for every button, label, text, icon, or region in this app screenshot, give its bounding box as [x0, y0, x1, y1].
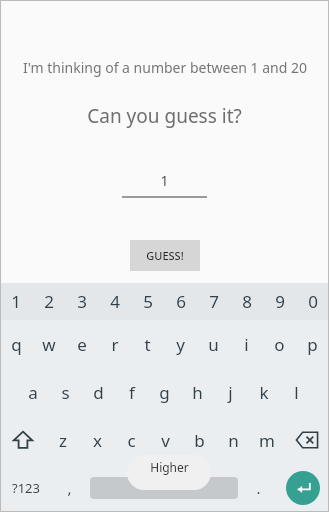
button[interactable]: 6 [164, 283, 197, 320]
staticText: z [59, 429, 67, 452]
button[interactable]: r [98, 320, 131, 368]
staticText: s [61, 381, 70, 404]
staticText: g [159, 381, 170, 404]
button[interactable]: 9 [263, 283, 296, 320]
button[interactable]: g [148, 368, 181, 416]
button[interactable]: q [0, 320, 32, 368]
staticText: GUESS! [146, 248, 184, 263]
button[interactable]: 8 [230, 283, 263, 320]
staticText: l [294, 381, 299, 404]
button[interactable]: . [241, 464, 276, 512]
staticText: w [42, 333, 56, 356]
staticText: ?123 [12, 479, 40, 497]
staticText: r [111, 333, 119, 356]
button[interactable]: f [115, 368, 148, 416]
staticText: 1 [160, 171, 169, 190]
button[interactable]: m [250, 416, 284, 464]
staticText: Higher [150, 459, 189, 475]
button[interactable]: Enter [276, 464, 329, 512]
staticText: 1 [11, 290, 21, 313]
staticText: 9 [275, 290, 285, 313]
staticText: o [274, 333, 285, 356]
button[interactable]: Backspace [284, 416, 329, 464]
staticText: . [256, 478, 261, 498]
staticText: 0 [308, 290, 318, 313]
button[interactable]: 2 [32, 283, 65, 320]
staticText: v [161, 429, 170, 452]
button[interactable]: , [52, 464, 87, 512]
button[interactable]: 1 [0, 283, 32, 320]
button[interactable]: Space [90, 477, 238, 499]
button[interactable]: Shift [0, 416, 46, 464]
button[interactable]: j [214, 368, 247, 416]
button[interactable]: a [16, 368, 49, 416]
button[interactable]: t [131, 320, 164, 368]
button[interactable]: GUESS! [130, 240, 200, 271]
button[interactable]: k [247, 368, 280, 416]
button[interactable]: 1 [122, 171, 207, 198]
button[interactable]: z [46, 416, 80, 464]
button[interactable]: l [280, 368, 313, 416]
button[interactable]: n [216, 416, 250, 464]
staticText: d [93, 381, 104, 404]
button[interactable]: o [263, 320, 296, 368]
staticText: b [194, 429, 205, 452]
staticText: 4 [110, 290, 120, 313]
button[interactable]: p [296, 320, 329, 368]
button[interactable]: e [65, 320, 98, 368]
button[interactable]: c [114, 416, 148, 464]
button[interactable]: 4 [98, 283, 131, 320]
staticText: m [259, 429, 275, 452]
staticText: k [259, 381, 269, 404]
staticText: y [176, 333, 185, 356]
staticText: c [127, 429, 136, 452]
button[interactable]: 5 [131, 283, 164, 320]
button[interactable]: ?123 [0, 464, 52, 512]
button[interactable]: i [230, 320, 263, 368]
staticText: f [129, 381, 135, 404]
button[interactable]: 7 [197, 283, 230, 320]
staticText: n [228, 429, 239, 452]
button[interactable]: h [181, 368, 214, 416]
staticText: j [228, 381, 233, 404]
button[interactable]: d [82, 368, 115, 416]
staticText: i [244, 333, 249, 356]
staticText: Can you guess it? [87, 103, 242, 129]
staticText: 6 [176, 290, 186, 313]
staticText: x [93, 429, 102, 452]
staticText: h [192, 381, 203, 404]
button[interactable]: u [197, 320, 230, 368]
staticText: u [208, 333, 219, 356]
button[interactable]: w [32, 320, 65, 368]
staticText: I'm thinking of a number between 1 and 2… [23, 58, 307, 77]
button[interactable]: 3 [65, 283, 98, 320]
staticText: p [307, 333, 318, 356]
staticText: 3 [77, 290, 87, 313]
staticText: t [144, 333, 151, 356]
button[interactable]: b [182, 416, 216, 464]
staticText: 7 [209, 290, 219, 313]
staticText: , [67, 478, 72, 498]
staticText: q [11, 333, 22, 356]
button[interactable]: s [49, 368, 82, 416]
button[interactable]: 0 [296, 283, 329, 320]
staticText: 5 [143, 290, 153, 313]
button[interactable]: v [148, 416, 182, 464]
button[interactable]: y [164, 320, 197, 368]
staticText: 2 [44, 290, 54, 313]
button[interactable]: x [80, 416, 114, 464]
staticText: e [77, 333, 87, 356]
staticText: 8 [242, 290, 252, 313]
staticText: a [28, 381, 38, 404]
